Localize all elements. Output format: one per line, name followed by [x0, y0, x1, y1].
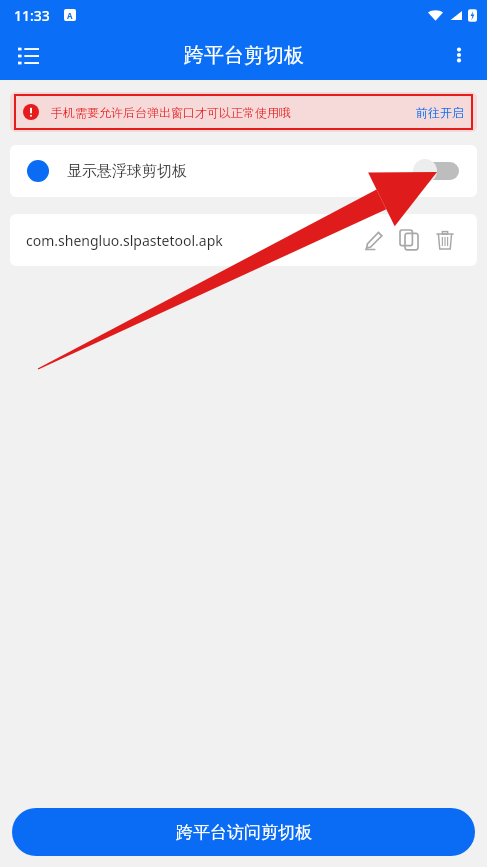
- button[interactable]: 手机需要允许后台弹出窗口才可以正常使用哦: [14, 94, 473, 130]
- button[interactable]: 前往开启: [416, 105, 464, 120]
- staticText: com.shengluo.slpastetool.apk: [26, 231, 223, 250]
- button[interactable]: com.shengluo.slpastetool.apk: [10, 214, 477, 266]
- button[interactable]: Copy: [391, 222, 427, 258]
- staticText: 手机需要允许后台弹出窗口才可以正常使用哦: [51, 105, 291, 120]
- staticText: 跨平台访问剪切板: [176, 822, 312, 843]
- button[interactable]: Delete: [427, 222, 463, 258]
- button[interactable]: Edit: [355, 222, 391, 258]
- staticText: 显示悬浮球剪切板: [67, 162, 187, 181]
- button[interactable]: Menu: [8, 35, 48, 75]
- button[interactable]: 跨平台访问剪切板: [12, 808, 475, 856]
- button[interactable]: Toggle floating clipboard: [413, 158, 459, 184]
- staticText: 跨平台剪切板: [184, 43, 304, 68]
- staticText: 11:33: [14, 6, 50, 25]
- button[interactable]: More options: [439, 35, 479, 75]
- button[interactable]: 显示悬浮球剪切板: [10, 145, 477, 197]
- staticText: A: [67, 10, 73, 21]
